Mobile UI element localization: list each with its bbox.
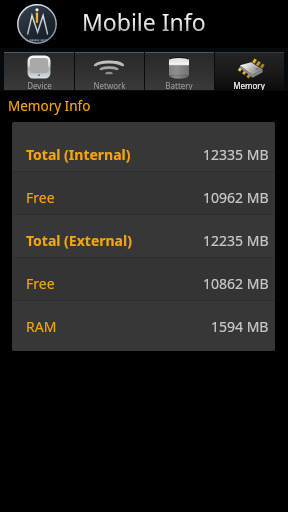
staticText: 12235 MB <box>203 231 269 250</box>
other: Mobile Info logo <box>16 3 58 45</box>
staticText: 10962 MB <box>203 188 269 207</box>
staticText: Total (Internal) <box>26 145 131 164</box>
staticText: Mobile Info <box>82 6 206 37</box>
button[interactable]: Total (External) <box>12 215 275 257</box>
button[interactable]: Free <box>12 172 275 214</box>
button[interactable]: Free <box>12 258 275 300</box>
button[interactable]: RAM <box>12 301 275 343</box>
staticText: RAM <box>26 317 57 336</box>
button[interactable]: Device <box>4 52 74 90</box>
staticText: 12335 MB <box>203 145 269 164</box>
staticText: Network <box>93 80 126 90</box>
button[interactable]: Network <box>74 52 144 90</box>
staticText: Memory <box>233 80 265 90</box>
staticText: Device <box>27 80 52 90</box>
button[interactable]: Memory <box>214 52 284 90</box>
staticText: Free <box>26 274 55 293</box>
staticText: Battery <box>165 80 193 90</box>
staticText: 10862 MB <box>203 274 269 293</box>
staticText: 1594 MB <box>211 317 269 336</box>
staticText: Memory Info <box>8 97 91 115</box>
staticText: Total (External) <box>26 231 132 250</box>
button[interactable]: Battery <box>144 52 214 90</box>
staticText: Free <box>26 188 55 207</box>
button[interactable]: Total (Internal) <box>12 129 275 171</box>
